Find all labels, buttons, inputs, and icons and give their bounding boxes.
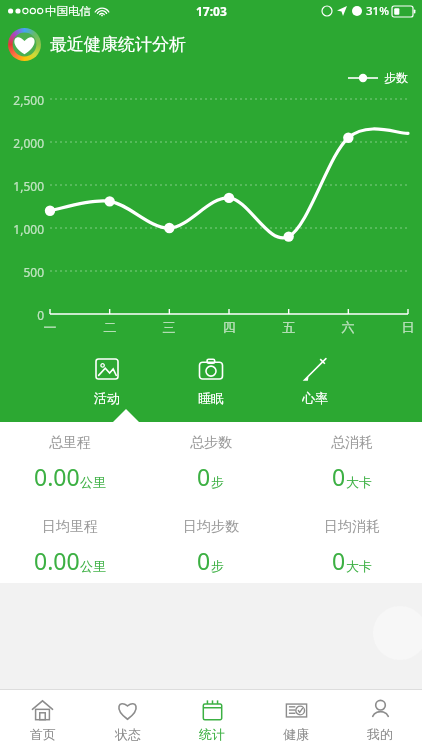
staticText: 我的 — [367, 726, 393, 742]
button[interactable]: 状态 — [85, 690, 170, 750]
staticText: 2,500 — [0, 92, 44, 108]
staticText: 步 — [211, 558, 224, 574]
staticText: 1,500 — [0, 178, 44, 194]
button[interactable]: 总消耗 — [281, 434, 422, 492]
staticText: 0.00 — [34, 461, 80, 492]
staticText: 中国电信 — [45, 4, 91, 18]
staticText: 六 — [338, 319, 358, 335]
button[interactable]: 首页 — [0, 690, 85, 750]
button[interactable]: 日均步数 — [140, 518, 281, 576]
staticText: 状态 — [115, 726, 141, 742]
staticText: 大卡 — [346, 558, 372, 574]
staticText: 0 — [332, 545, 346, 576]
staticText: 最近健康统计分析 — [50, 34, 186, 55]
button[interactable]: 总步数 — [140, 434, 281, 492]
staticText: 首页 — [30, 726, 56, 742]
staticText: 三 — [159, 319, 179, 335]
button[interactable]: 日均消耗 — [281, 518, 422, 576]
staticText: 健康 — [283, 726, 309, 742]
staticText: 日均里程 — [42, 518, 98, 536]
button[interactable]: 统计 — [170, 690, 254, 750]
staticText: 总里程 — [49, 434, 91, 452]
staticText: 1,000 — [0, 221, 44, 237]
staticText: 日均消耗 — [324, 518, 380, 536]
staticText: 0 — [332, 461, 346, 492]
staticText: 步数 — [384, 70, 408, 85]
staticText: 17:03 — [196, 3, 227, 19]
button[interactable]: 心率 — [284, 356, 346, 406]
staticText: 大卡 — [346, 474, 372, 490]
staticText: 活动 — [94, 390, 120, 406]
staticText: 步 — [211, 474, 224, 490]
staticText: 二 — [100, 319, 120, 335]
staticText: 0.00 — [34, 545, 80, 576]
staticText: 一 — [40, 319, 60, 335]
staticText: 0 — [197, 461, 211, 492]
button[interactable]: 总里程 — [0, 434, 140, 492]
staticText: 日均步数 — [183, 518, 239, 536]
staticText: 五 — [279, 319, 299, 335]
staticText: 0 — [197, 545, 211, 576]
button[interactable]: 健康 — [254, 690, 338, 750]
staticText: 0 — [0, 307, 44, 323]
staticText: 500 — [0, 264, 44, 280]
button[interactable]: 活动 — [76, 356, 138, 406]
staticText: 总消耗 — [331, 434, 373, 452]
staticText: 统计 — [199, 726, 225, 742]
button[interactable]: 睡眠 — [180, 356, 242, 406]
staticText: 日 — [398, 319, 418, 335]
staticText: 睡眠 — [198, 390, 224, 406]
staticText: 公里 — [80, 558, 106, 574]
staticText: 总步数 — [190, 434, 232, 452]
button[interactable]: 我的 — [338, 690, 422, 750]
staticText: 心率 — [302, 390, 328, 406]
staticText: 31% — [366, 3, 389, 19]
button[interactable]: 日均里程 — [0, 518, 140, 576]
staticText: 2,000 — [0, 135, 44, 151]
staticText: 四 — [219, 319, 239, 335]
staticText: 公里 — [80, 474, 106, 490]
